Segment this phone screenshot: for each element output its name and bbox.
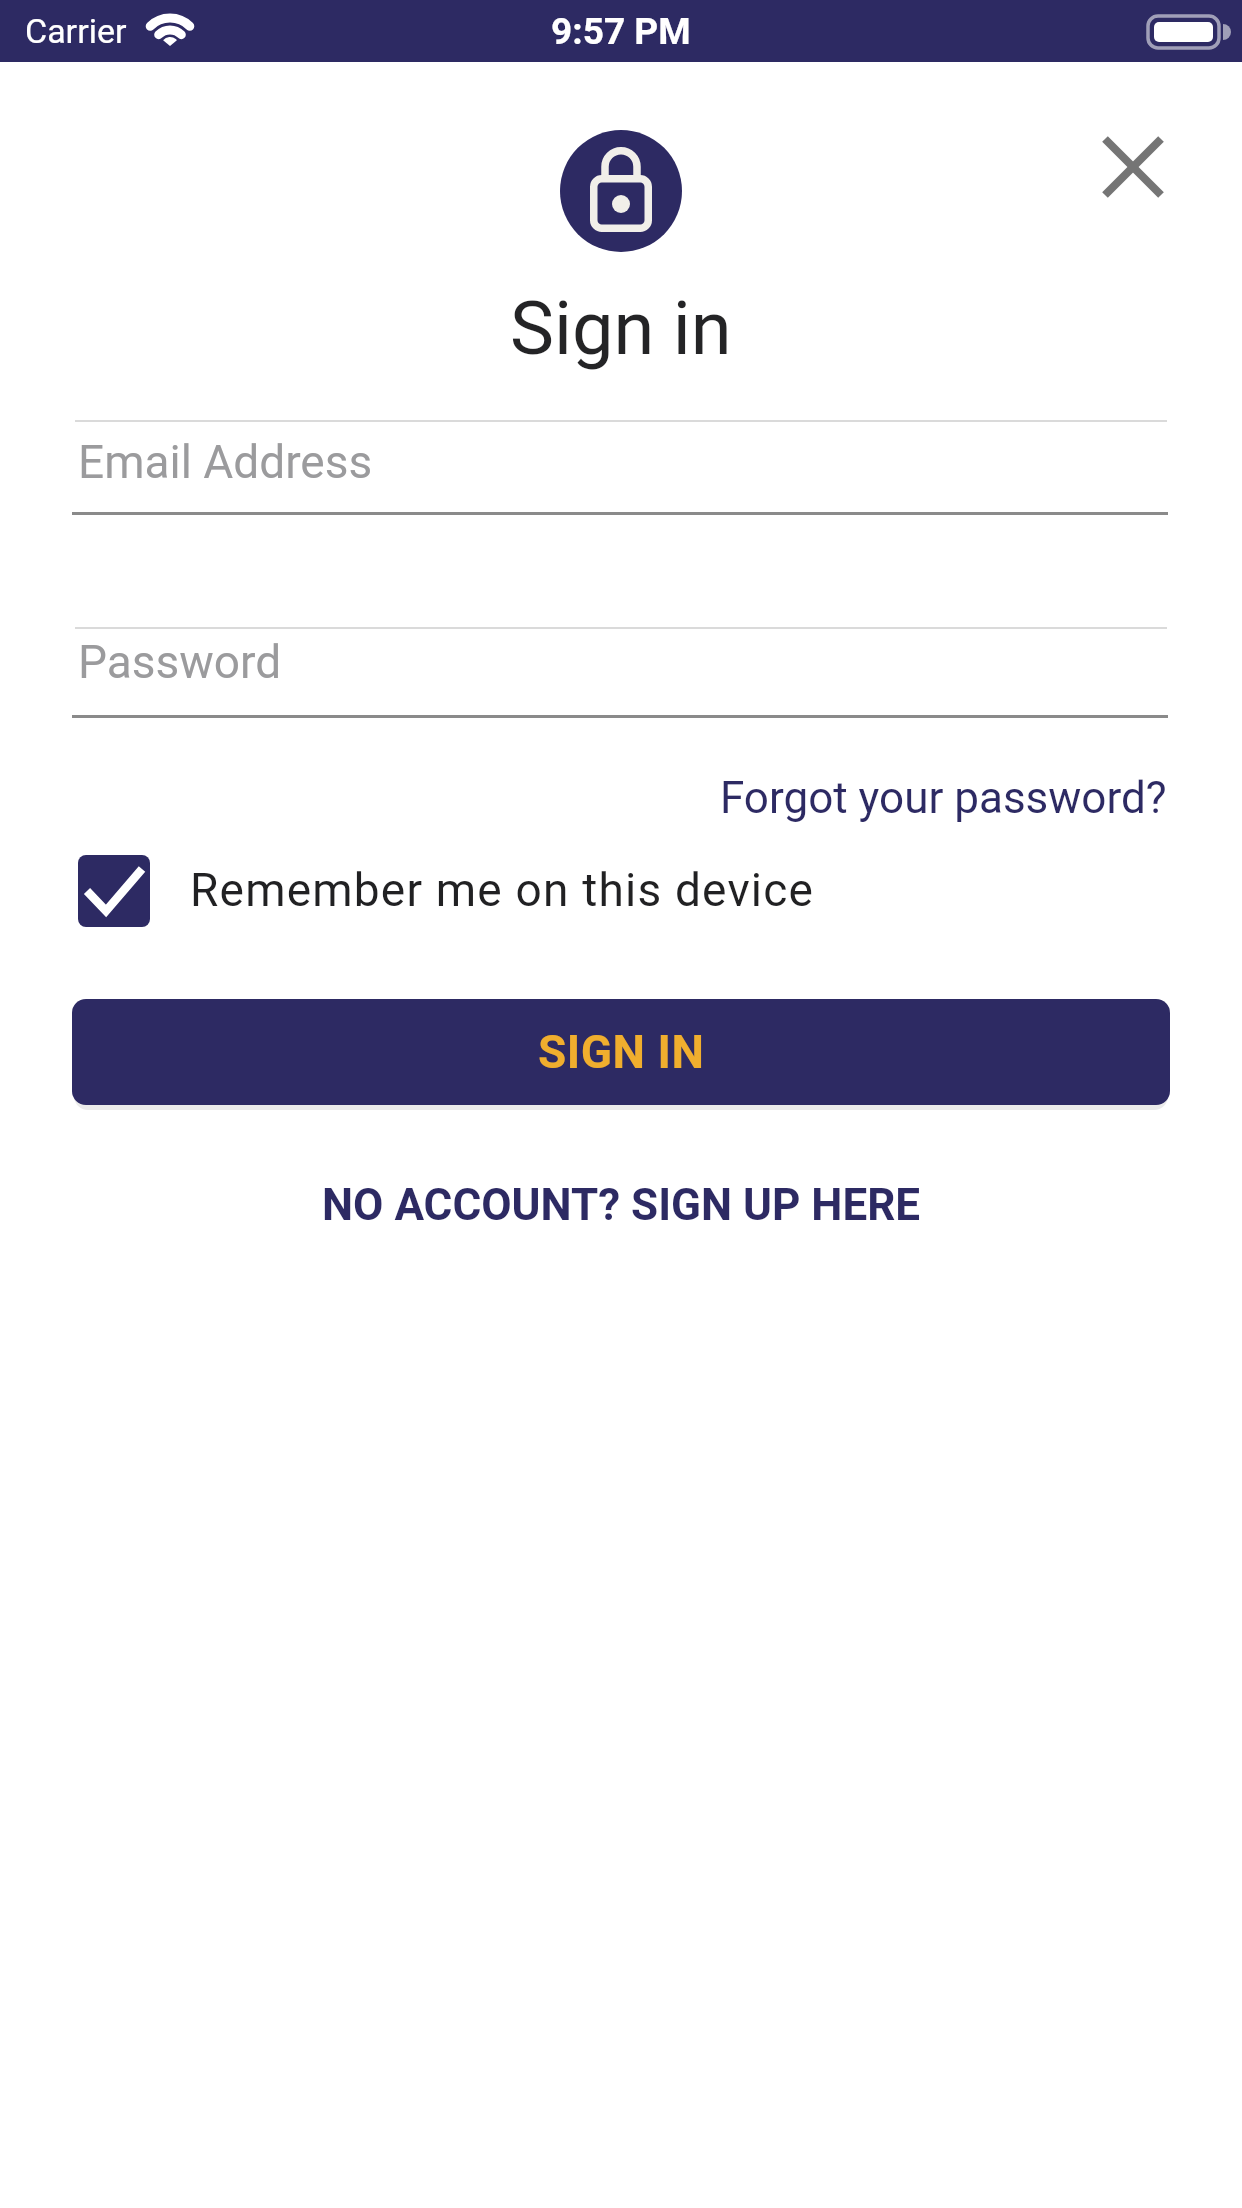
staticText: Sign in	[510, 285, 732, 372]
staticText: Forgot your password?	[720, 772, 1167, 824]
staticText: NO ACCOUNT? SIGN UP HERE	[322, 1179, 921, 1231]
button[interactable]: Forgot your password?	[720, 772, 1167, 824]
staticText: SIGN IN	[538, 1025, 705, 1079]
staticText: Email Address	[78, 435, 373, 489]
staticText: 9:57 PM	[551, 10, 691, 53]
button[interactable]: SIGN IN	[72, 999, 1170, 1105]
button[interactable]: NO ACCOUNT? SIGN UP HERE	[322, 1179, 921, 1231]
button[interactable]	[1092, 126, 1174, 208]
button[interactable]	[78, 855, 150, 927]
staticText: Remember me on this device	[190, 863, 815, 917]
staticText: Password	[78, 635, 282, 689]
staticText: Carrier	[25, 11, 127, 51]
